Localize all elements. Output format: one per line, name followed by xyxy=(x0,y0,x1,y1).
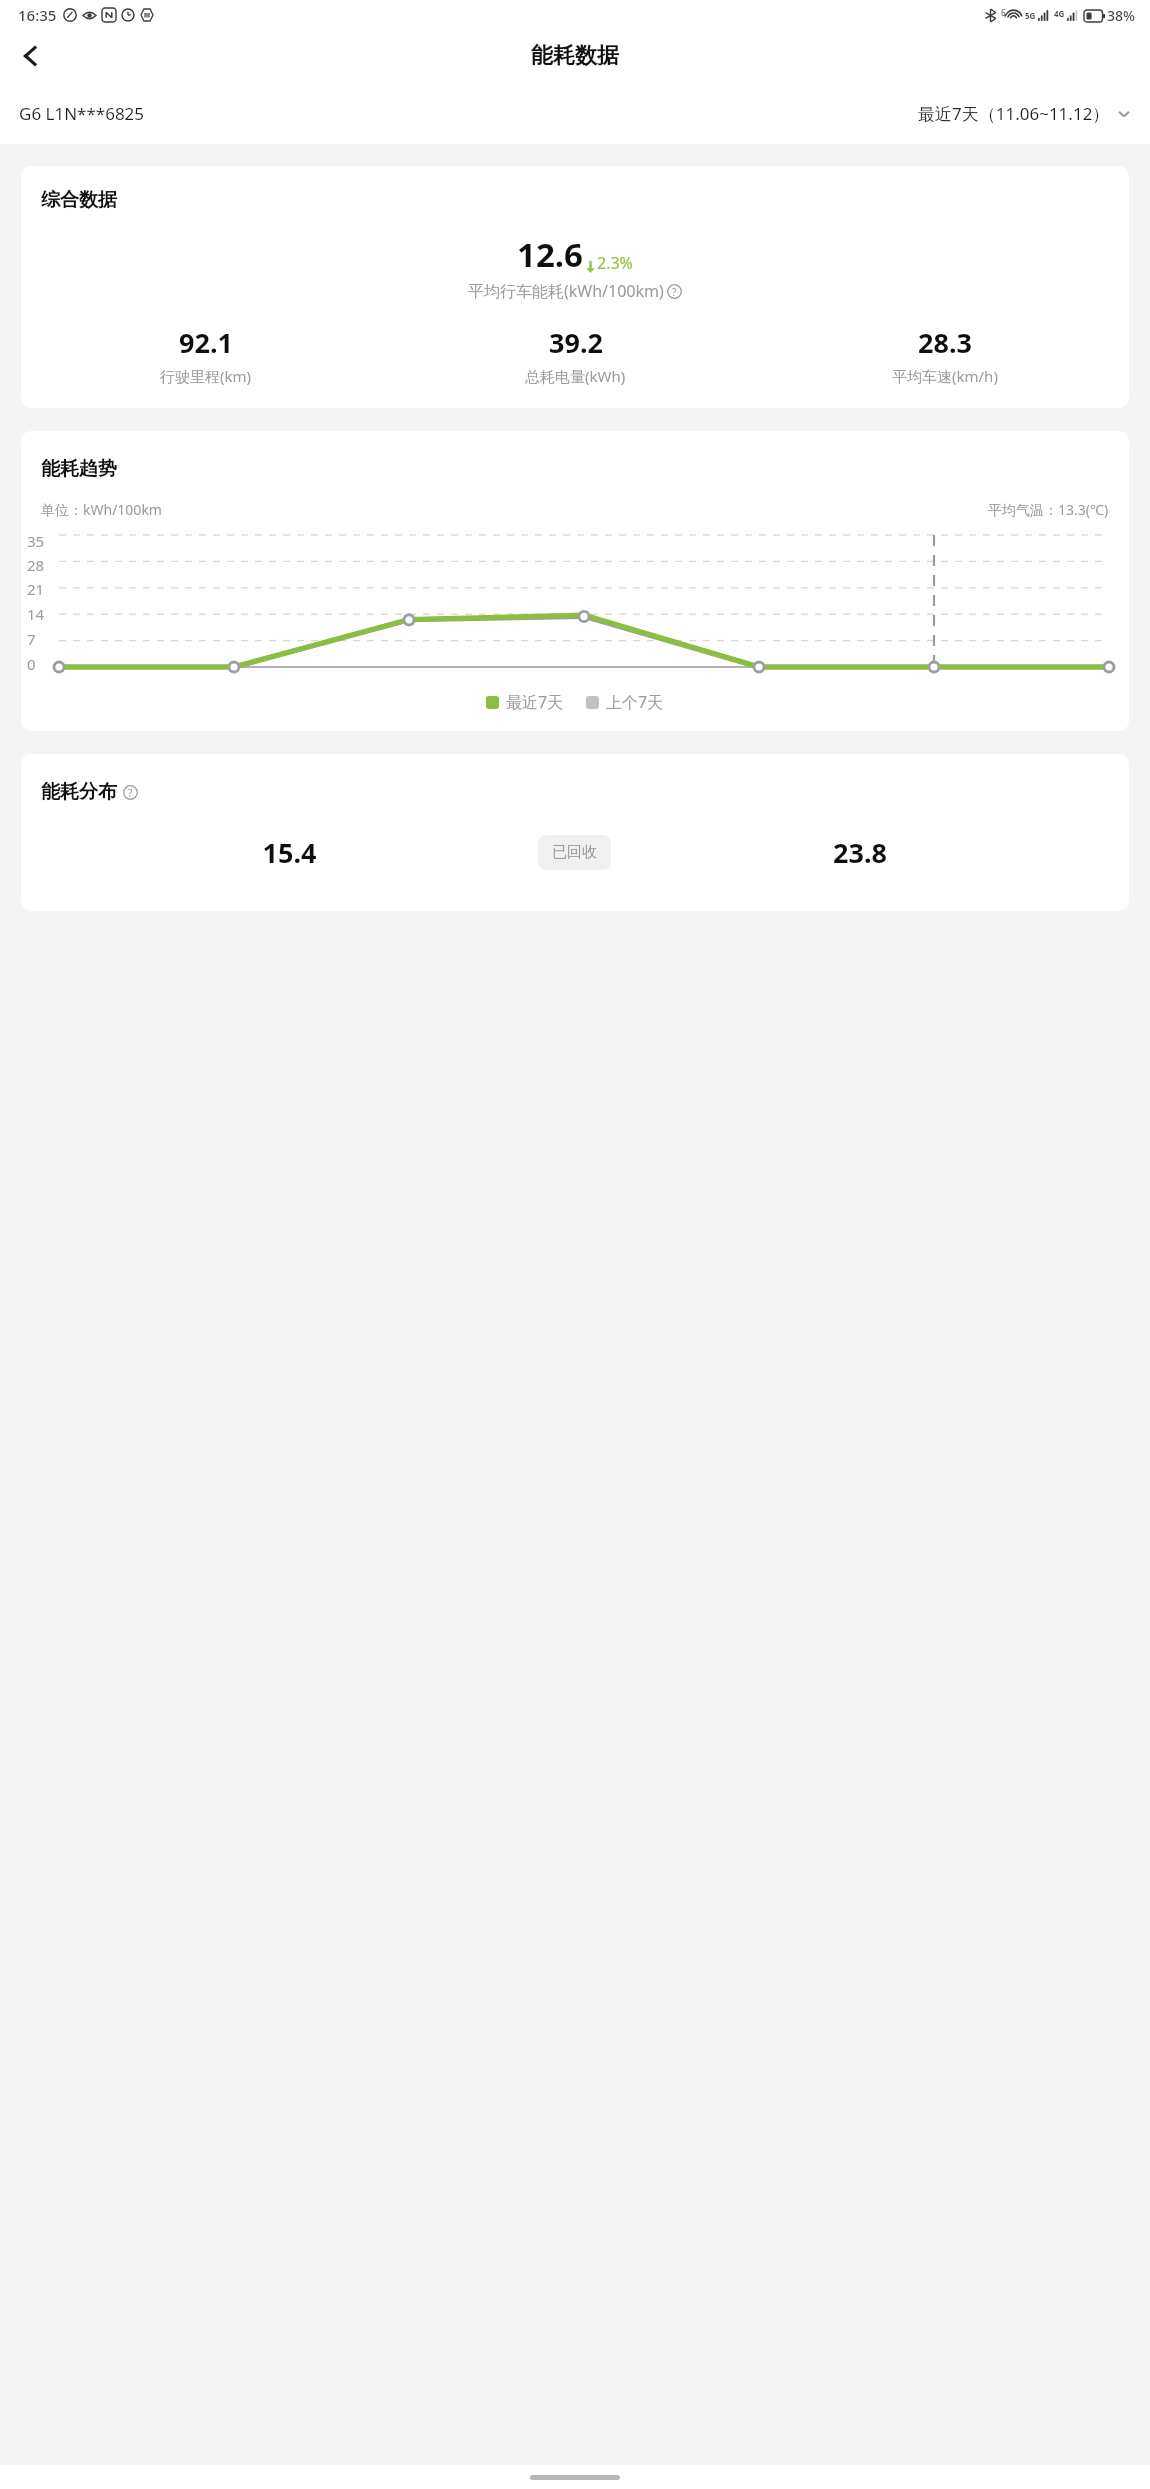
staticText: 15.4 xyxy=(41,834,538,871)
staticText: 38% xyxy=(1107,6,1135,25)
staticText: 能耗趋势 xyxy=(41,457,117,481)
staticText: 12.6 xyxy=(517,232,583,277)
staticText: 总耗电量(kWh) xyxy=(525,366,626,386)
staticText: 平均行车能耗(kWh/100km) xyxy=(468,280,664,302)
staticText: 已回收 xyxy=(552,843,597,862)
staticText: 最近7天 xyxy=(506,691,564,713)
staticText: 5G xyxy=(1025,10,1036,21)
staticText: 0 xyxy=(27,654,36,674)
staticText: 上个7天 xyxy=(606,691,664,713)
staticText: 7 xyxy=(27,629,36,649)
staticText: 2.3% xyxy=(597,252,633,274)
staticText: 能耗数据 xyxy=(531,42,619,70)
button[interactable]: 最近7天（11.06~11.12） xyxy=(918,98,1131,129)
staticText: 92.1 xyxy=(179,324,233,361)
button[interactable]: 能耗分布 xyxy=(21,754,1129,911)
staticText: 35 xyxy=(27,531,45,551)
staticText: ? xyxy=(128,786,133,800)
staticText: 23.8 xyxy=(611,834,1109,871)
button[interactable]: 能耗趋势 xyxy=(21,431,1129,731)
staticText: 28.3 xyxy=(918,324,972,361)
staticText: 行驶里程(km) xyxy=(160,366,252,386)
staticText: 综合数据 xyxy=(41,188,117,212)
staticText: G6 L1N***6825 xyxy=(19,102,145,125)
staticText: 能耗分布 xyxy=(41,780,117,804)
staticText: 单位：kWh/100km xyxy=(41,500,162,519)
staticText: 最近7天（11.06~11.12） xyxy=(918,102,1110,125)
staticText: 6 xyxy=(1001,7,1006,18)
staticText: 平均车速(km/h) xyxy=(892,366,998,386)
staticText: 4G xyxy=(1054,8,1065,19)
staticText: 21 xyxy=(27,579,45,599)
button[interactable]: 综合数据 xyxy=(21,166,1129,408)
staticText: 平均气温：13.3(℃) xyxy=(988,500,1109,519)
button[interactable]: Back xyxy=(6,32,54,80)
staticText: 16:35 xyxy=(18,5,57,25)
staticText: 28 xyxy=(27,555,45,575)
staticText: 14 xyxy=(27,604,45,624)
staticText: ? xyxy=(672,285,677,299)
staticText: 39.2 xyxy=(549,324,603,361)
